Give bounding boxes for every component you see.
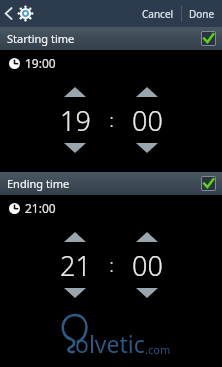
button[interactable]: Back to settings <box>0 0 40 27</box>
button[interactable]: Hour value 21 <box>52 245 98 285</box>
staticText: 19 <box>60 102 91 139</box>
button[interactable]: 21:00 <box>0 199 222 217</box>
button[interactable]: Hour value 19 <box>52 100 98 140</box>
button[interactable]: 19:00 <box>0 54 222 72</box>
button[interactable]: Starting time <box>0 27 222 50</box>
button[interactable]: Cancel <box>135 0 181 27</box>
button[interactable]: Starting time enabled <box>201 31 216 46</box>
staticText: .com <box>145 342 171 357</box>
staticText: 21 <box>60 247 91 284</box>
button[interactable]: Ending time <box>0 172 222 195</box>
button[interactable]: Increase Minute <box>127 84 167 100</box>
staticText: 00 <box>132 247 163 284</box>
staticText: Ending time <box>7 176 70 191</box>
button[interactable]: Increase Hour <box>55 84 95 100</box>
button[interactable]: Decrease Minute <box>127 285 167 301</box>
button[interactable]: Increase Minute <box>127 229 167 245</box>
button[interactable]: Decrease Hour <box>55 285 95 301</box>
button[interactable]: Decrease Minute <box>127 140 167 156</box>
staticText: 19:00 <box>25 55 56 71</box>
staticText: Starting time <box>7 31 75 46</box>
staticText: 21:00 <box>25 200 56 216</box>
staticText: 00 <box>132 102 163 139</box>
staticText: : <box>109 252 114 278</box>
staticText: Done <box>189 7 215 21</box>
button[interactable]: Increase Hour <box>55 229 95 245</box>
button[interactable]: Done <box>182 0 222 27</box>
staticText: : <box>109 107 114 133</box>
staticText: olvetic <box>75 328 145 359</box>
button[interactable]: Minute value 00 <box>124 245 170 285</box>
button[interactable]: Ending time enabled <box>201 176 216 191</box>
button[interactable]: Minute value 00 <box>124 100 170 140</box>
button[interactable]: Decrease Hour <box>55 140 95 156</box>
staticText: Cancel <box>142 7 174 21</box>
